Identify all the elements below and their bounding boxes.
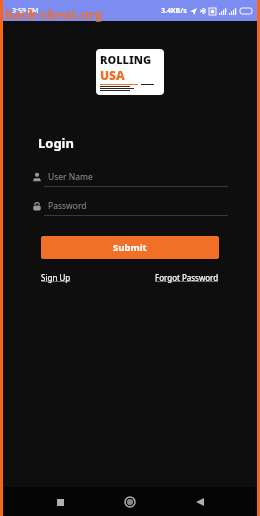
button[interactable]: Password bbox=[32, 200, 228, 216]
staticText: hack-cheat.org bbox=[5, 5, 103, 23]
staticText: Login bbox=[38, 134, 74, 152]
button[interactable]: Sign Up bbox=[41, 269, 71, 286]
staticText: USA bbox=[100, 67, 125, 83]
staticText: ROLLING bbox=[100, 52, 152, 67]
button[interactable]: User Name bbox=[32, 171, 228, 187]
button[interactable]: Home bbox=[117, 489, 143, 515]
staticText: Sign Up bbox=[41, 272, 71, 283]
staticText: User Name bbox=[48, 171, 93, 183]
staticText: 3:59 PM bbox=[12, 6, 39, 16]
staticText: 3.4KB/s bbox=[161, 6, 187, 16]
staticText: Submit bbox=[113, 241, 147, 254]
staticText: Forgot Password bbox=[155, 272, 219, 283]
button[interactable]: Recent apps bbox=[47, 489, 73, 515]
button[interactable]: Submit bbox=[41, 236, 219, 259]
button[interactable]: Back bbox=[187, 489, 213, 515]
staticText: Password bbox=[48, 200, 87, 212]
button[interactable]: Forgot Password bbox=[155, 269, 219, 286]
